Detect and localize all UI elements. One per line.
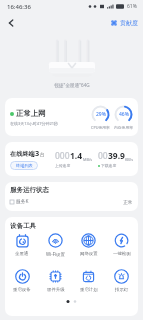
staticText: 46%: [119, 111, 129, 118]
staticText: 16:46:36: [7, 3, 31, 11]
staticText: MB/s: [83, 157, 93, 162]
staticText: KB/s: [125, 157, 134, 162]
button[interactable]: 终端列表: [10, 161, 38, 170]
staticText: 下载速度: [101, 163, 117, 168]
staticText: 29%: [96, 111, 106, 118]
button[interactable]: 重启设备: [5, 269, 39, 293]
staticText: 全屋通: [15, 251, 29, 257]
staticText: Wi-Fi设置: [46, 251, 65, 257]
staticText: 3: [35, 148, 40, 158]
staticText: 锐捷"全屋通"64G: [54, 82, 90, 88]
staticText: 固件升级: [47, 287, 65, 293]
staticText: 正常: [123, 199, 133, 205]
staticText: 服务运行状态: [10, 186, 49, 194]
staticText: 贡献度: [120, 19, 138, 27]
staticText: 在线终端: [10, 150, 35, 158]
button[interactable]: 贡献度: [110, 19, 138, 27]
staticText: 内存使用率: [114, 125, 133, 130]
staticText: 一键检测: [113, 251, 131, 257]
staticText: 正常上网: [16, 109, 46, 118]
staticText: 39.9: [108, 150, 125, 162]
staticText: 00: [98, 150, 108, 162]
staticText: 上传速度: [55, 163, 71, 168]
staticText: 在线3天13小时47分钟21秒: [10, 121, 59, 126]
staticText: CPU使用率: [91, 125, 110, 130]
staticText: 设备工具: [10, 222, 36, 230]
button[interactable]: 网络设置: [72, 233, 105, 257]
staticText: 重启设备: [13, 287, 31, 293]
staticText: 网络设置: [80, 251, 98, 257]
staticText: 61%: [127, 3, 137, 10]
button[interactable]: Wi-Fi设置: [39, 233, 72, 257]
staticText: 服务K: [16, 198, 29, 205]
button[interactable]: 指示灯: [105, 269, 138, 293]
button[interactable]: 固件升级: [39, 269, 72, 293]
staticText: 终端列表: [16, 163, 33, 168]
button[interactable]: 一键检测: [105, 233, 138, 257]
staticText: 1.4: [70, 150, 83, 162]
button[interactable]: Back: [3, 15, 19, 31]
button[interactable]: 全屋通: [5, 233, 39, 257]
staticText: 000: [55, 150, 70, 162]
staticText: 重启计划: [80, 287, 98, 293]
staticText: 指示灯: [115, 287, 129, 293]
staticText: 台: [40, 152, 45, 158]
button[interactable]: 重启计划: [72, 269, 105, 293]
